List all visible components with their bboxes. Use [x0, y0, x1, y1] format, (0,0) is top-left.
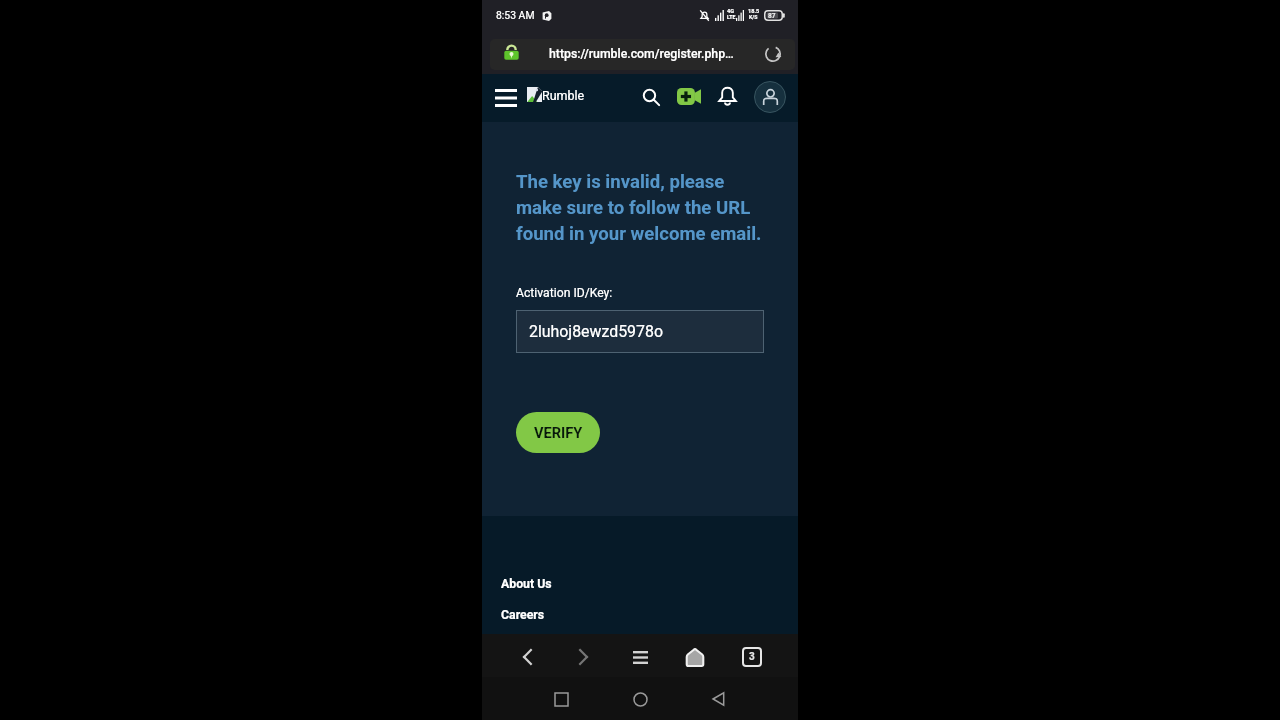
button[interactable]: Home — [675, 637, 715, 677]
button[interactable]: Notifications — [714, 81, 742, 113]
button[interactable]: Forward — [563, 637, 603, 677]
button[interactable]: https://rumble.com/register.php… — [490, 39, 795, 70]
staticText: Rumble — [542, 88, 585, 103]
staticText: VERIFY — [534, 424, 583, 441]
button[interactable]: Recents — [541, 679, 581, 719]
staticText: Activation ID/Key: — [516, 286, 613, 300]
button[interactable]: Tabs — [732, 637, 772, 677]
staticText: https://rumble.com/register.php… — [549, 47, 734, 61]
staticText: K/S — [749, 14, 758, 20]
button[interactable]: Upload video — [672, 81, 706, 113]
button[interactable]: Menu — [489, 81, 523, 115]
button[interactable]: Rumble — [527, 84, 585, 106]
button[interactable]: About Us — [501, 577, 552, 591]
staticText: 4G — [727, 8, 735, 15]
button[interactable]: Reload — [761, 42, 785, 66]
button[interactable]: Back — [698, 679, 738, 719]
staticText: LTE — [727, 14, 736, 20]
staticText: The key is invalid, please make sure to … — [516, 171, 766, 245]
button[interactable]: Browser menu — [620, 637, 660, 677]
button[interactable]: Back — [507, 637, 547, 677]
button[interactable]: 2luhoj8ewzd5978o — [516, 310, 764, 353]
staticText: 18.5 — [748, 8, 760, 15]
button[interactable]: VERIFY — [516, 412, 600, 453]
staticText: 2luhoj8ewzd5978o — [529, 322, 663, 341]
button[interactable]: Careers — [501, 608, 545, 622]
staticText: 8:53 AM — [496, 9, 535, 21]
staticText: 87 — [768, 12, 776, 20]
button[interactable]: Home — [620, 679, 660, 719]
button[interactable]: Search — [635, 81, 667, 113]
button[interactable]: Account — [754, 81, 786, 113]
staticText: 3 — [749, 651, 755, 663]
